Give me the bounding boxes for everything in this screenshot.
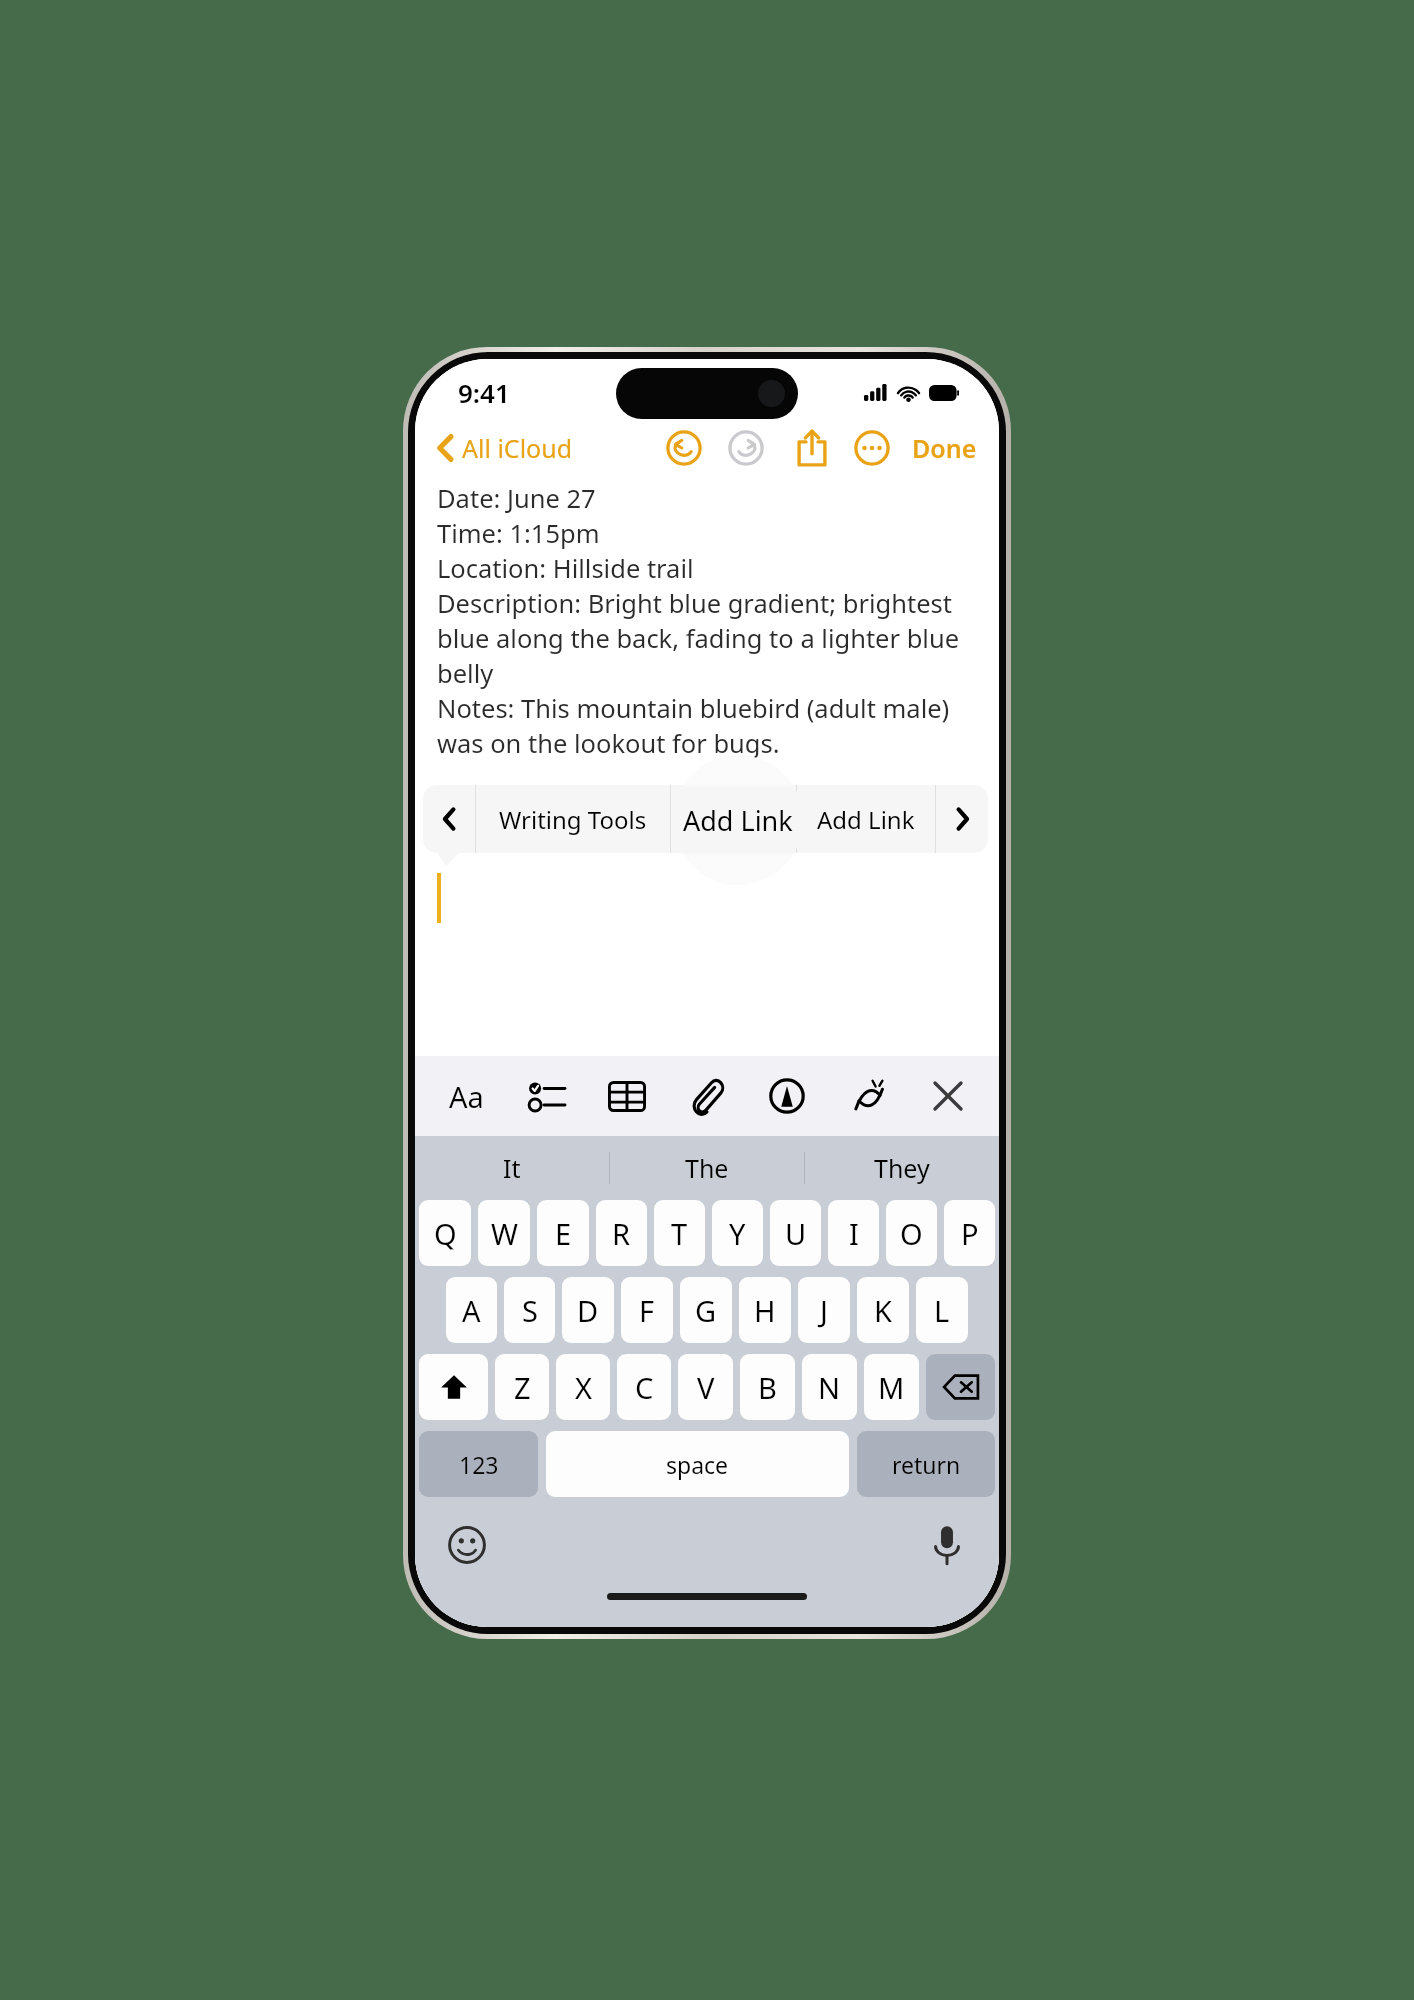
staticText: F — [639, 1291, 655, 1330]
staticText: X — [575, 1368, 592, 1407]
staticText: S — [522, 1291, 538, 1330]
staticText: T — [671, 1214, 688, 1253]
button[interactable]: 123 — [419, 1431, 538, 1497]
button[interactable]: E — [537, 1200, 589, 1266]
button[interactable]: S — [504, 1277, 555, 1343]
staticText: 123 — [459, 1449, 499, 1480]
button[interactable]: A — [446, 1277, 497, 1343]
button[interactable]: Backspace — [926, 1354, 995, 1420]
button[interactable]: Q — [419, 1200, 471, 1266]
button[interactable]: T — [654, 1200, 705, 1266]
staticText: Y — [729, 1214, 746, 1253]
button[interactable]: G — [680, 1277, 732, 1343]
staticText: Description: Bright blue gradient; brigh… — [437, 586, 952, 621]
button[interactable]: H — [739, 1277, 791, 1343]
staticText: space — [666, 1449, 729, 1480]
staticText: Add Link — [817, 803, 915, 836]
button[interactable]: Share — [790, 426, 834, 470]
staticText: AutoFill — [691, 803, 776, 836]
staticText: E — [555, 1214, 572, 1253]
staticText: 9:41 — [458, 375, 510, 410]
button[interactable]: Previous — [423, 785, 475, 853]
button[interactable]: More options — [850, 426, 894, 470]
staticText: It — [503, 1151, 521, 1185]
staticText: O — [900, 1214, 923, 1253]
staticText: Date: June 27 — [437, 481, 596, 516]
button[interactable]: Smart script — [839, 1067, 897, 1125]
button[interactable]: Table — [598, 1067, 656, 1125]
staticText: P — [961, 1214, 979, 1253]
staticText: A — [462, 1291, 481, 1330]
staticText: G — [695, 1291, 717, 1330]
button[interactable]: Emoji — [441, 1519, 493, 1571]
button[interactable]: M — [864, 1354, 919, 1420]
staticText: Aa — [449, 1077, 484, 1116]
button[interactable]: W — [478, 1200, 530, 1266]
staticText: I — [849, 1214, 859, 1253]
button[interactable]: Markup — [758, 1067, 816, 1125]
staticText: W — [491, 1214, 518, 1253]
button[interactable]: Checklist — [518, 1067, 576, 1125]
button[interactable]: L — [916, 1277, 968, 1343]
staticText: B — [758, 1368, 777, 1407]
button[interactable]: Shift — [419, 1354, 488, 1420]
button[interactable]: Writing Tools — [476, 785, 670, 853]
button[interactable]: J — [798, 1277, 850, 1343]
button[interactable]: C — [617, 1354, 671, 1420]
staticText: Time: 1:15pm — [437, 516, 600, 551]
staticText: They — [874, 1151, 930, 1185]
button[interactable]: D — [562, 1277, 614, 1343]
staticText: Location: Hillside trail — [437, 551, 694, 586]
staticText: V — [697, 1368, 715, 1407]
button[interactable]: X — [556, 1354, 610, 1420]
staticText: H — [754, 1291, 776, 1330]
button[interactable]: B — [740, 1354, 795, 1420]
staticText: The — [685, 1151, 729, 1185]
button[interactable]: R — [596, 1200, 647, 1266]
button[interactable]: Add Link — [797, 785, 935, 853]
staticText: All iCloud — [462, 431, 573, 465]
button[interactable]: Done — [908, 425, 981, 471]
staticText: return — [892, 1449, 961, 1480]
button[interactable]: Attach — [678, 1067, 736, 1125]
button[interactable]: Dictate — [921, 1519, 973, 1571]
staticText: U — [785, 1214, 807, 1253]
button[interactable]: It — [415, 1136, 609, 1200]
staticText: C — [635, 1368, 654, 1407]
button[interactable]: Next — [936, 785, 988, 853]
staticText: D — [577, 1291, 599, 1330]
button[interactable]: F — [621, 1277, 673, 1343]
button[interactable]: Close — [919, 1067, 977, 1125]
button[interactable]: Z — [495, 1354, 549, 1420]
button[interactable]: U — [770, 1200, 821, 1266]
button[interactable]: N — [802, 1354, 857, 1420]
staticText: belly — [437, 656, 494, 691]
button[interactable]: P — [944, 1200, 995, 1266]
staticText: N — [818, 1368, 841, 1407]
staticText: K — [874, 1291, 892, 1330]
button[interactable]: return — [857, 1431, 995, 1497]
button[interactable]: space — [546, 1431, 849, 1497]
button[interactable]: All iCloud — [433, 425, 577, 471]
button[interactable]: Text format — [437, 1067, 495, 1125]
button[interactable]: V — [678, 1354, 733, 1420]
staticText: Q — [434, 1214, 457, 1253]
button[interactable]: AutoFill — [671, 785, 796, 853]
button[interactable]: Y — [712, 1200, 763, 1266]
button[interactable]: Add Link — [683, 802, 793, 839]
staticText: J — [820, 1291, 828, 1330]
button[interactable]: K — [857, 1277, 909, 1343]
staticText: Writing Tools — [499, 803, 647, 836]
staticText: blue along the back, fading to a lighter… — [437, 621, 960, 656]
staticText: R — [612, 1214, 631, 1253]
button[interactable]: O — [886, 1200, 937, 1266]
staticText: M — [878, 1368, 905, 1407]
button[interactable]: Redo — [724, 426, 768, 470]
button[interactable]: I — [828, 1200, 879, 1266]
staticText: Notes: This mountain bluebird (adult mal… — [437, 691, 950, 726]
staticText: was on the lookout for bugs. — [437, 726, 780, 761]
button[interactable]: They — [805, 1136, 999, 1200]
button[interactable]: The — [610, 1136, 804, 1200]
button[interactable]: Undo — [662, 426, 706, 470]
staticText: L — [934, 1291, 950, 1330]
